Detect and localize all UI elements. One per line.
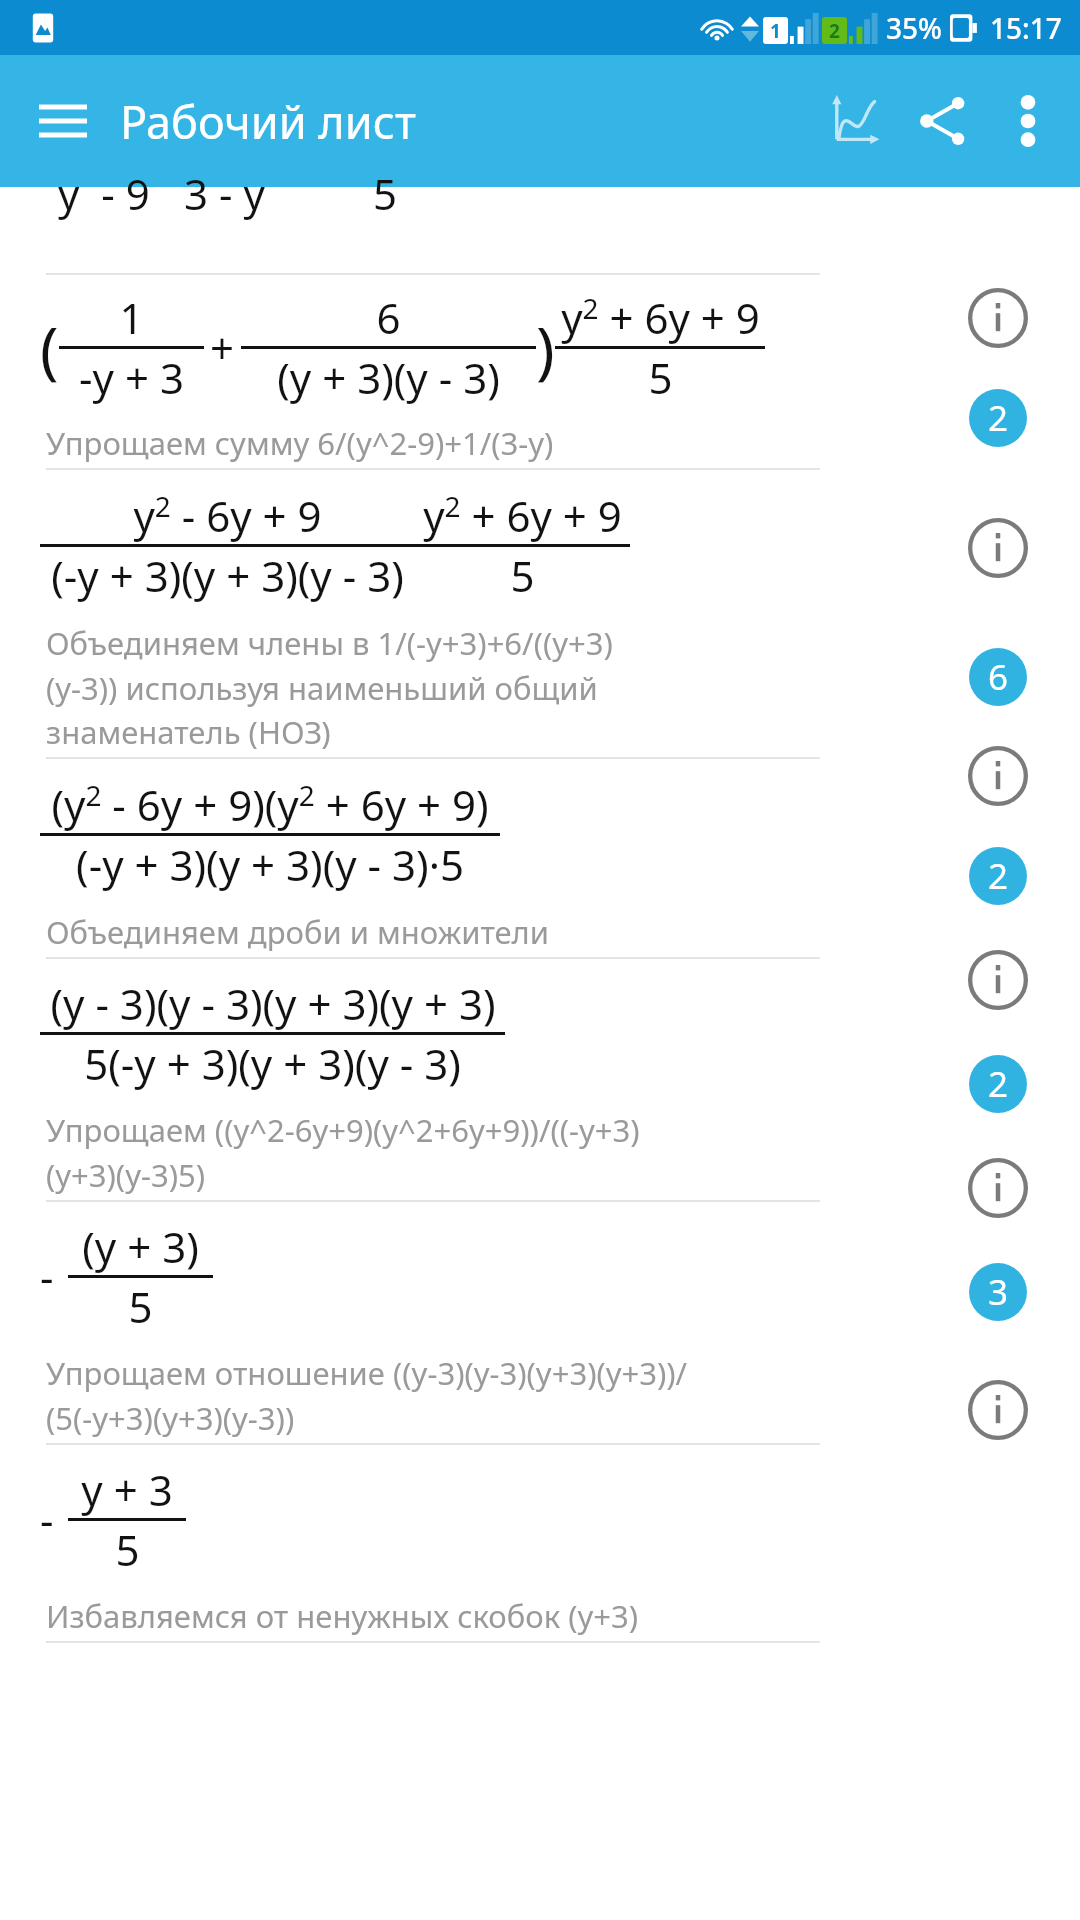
staticText: + bbox=[210, 319, 235, 376]
button[interactable]: Step 2 bbox=[968, 388, 1028, 448]
button[interactable]: Share bbox=[898, 76, 988, 166]
staticText: (-y + 3)(y + 3)(y - 3)·5 bbox=[76, 836, 464, 893]
staticText: Рабочий лист bbox=[120, 91, 416, 152]
staticText: (y - 3)(y - 3)(y + 3)(y + 3) bbox=[50, 975, 496, 1032]
staticText: 5 bbox=[648, 349, 673, 406]
staticText: (y + 3)(y - 3) bbox=[277, 349, 500, 406]
button[interactable]: More options bbox=[988, 81, 1068, 161]
staticText: y2 + 6y + 9 bbox=[423, 487, 622, 544]
staticText: Упрощаем отношение ((y-3)(y-3)(y+3)(y+3)… bbox=[46, 1352, 688, 1439]
staticText: y + 3 bbox=[81, 1461, 173, 1518]
staticText: y2 - 6y + 9 bbox=[133, 487, 322, 544]
staticText: 5 bbox=[115, 1521, 140, 1578]
staticText: 6 bbox=[988, 653, 1009, 701]
staticText: (y + 3) bbox=[82, 1218, 199, 1275]
staticText: Упрощаем сумму 6/(y^2-9)+1/(3-y) bbox=[46, 422, 554, 464]
staticText: 5(-y + 3)(y + 3)(y - 3) bbox=[84, 1035, 461, 1092]
staticText: 1 bbox=[119, 289, 144, 346]
button[interactable]: Step 2 bbox=[968, 846, 1028, 906]
staticText: 1 bbox=[770, 18, 781, 44]
staticText: 35% bbox=[886, 9, 942, 47]
button[interactable]: Info bbox=[968, 746, 1028, 806]
staticText: ) bbox=[536, 306, 555, 390]
button[interactable]: Info bbox=[968, 1158, 1028, 1218]
staticText: Объединяем члены в 1/(-y+3)+6/((y+3) (y-… bbox=[46, 622, 613, 753]
button[interactable]: Menu bbox=[28, 86, 98, 156]
button[interactable]: Graph bbox=[808, 76, 898, 166]
staticText: (y2 - 6y + 9)(y2 + 6y + 9) bbox=[51, 776, 489, 833]
staticText: 5 bbox=[510, 547, 535, 604]
staticText: -y + 3 bbox=[79, 349, 184, 406]
button[interactable]: Step 3 bbox=[968, 1262, 1028, 1322]
staticText: 3 - y bbox=[184, 165, 265, 222]
button[interactable]: Step 6 bbox=[968, 647, 1028, 707]
staticText: - bbox=[40, 1248, 54, 1305]
staticText: 2 bbox=[988, 394, 1009, 442]
staticText: 3 bbox=[988, 1268, 1009, 1316]
staticText: Объединяем дроби и множители bbox=[46, 911, 550, 953]
staticText: y2 + 6y + 9 bbox=[561, 289, 760, 346]
button[interactable]: Info bbox=[968, 518, 1028, 578]
staticText: Избавляемся от ненужных скобок (y+3) bbox=[46, 1595, 639, 1637]
staticText: (-y + 3)(y + 3)(y - 3) bbox=[51, 547, 404, 604]
staticText: 5 bbox=[373, 165, 398, 222]
staticText: ( bbox=[40, 306, 59, 390]
staticText: 2 bbox=[829, 18, 840, 44]
button[interactable]: Info bbox=[968, 950, 1028, 1010]
staticText: 2 bbox=[988, 1060, 1009, 1108]
button[interactable]: Step 2 bbox=[968, 1054, 1028, 1114]
staticText: Упрощаем ((y^2-6y+9)(y^2+6y+9))/((-y+3) … bbox=[46, 1109, 640, 1196]
staticText: 15:17 bbox=[990, 9, 1062, 47]
staticText: - bbox=[40, 1491, 54, 1548]
button[interactable]: Info bbox=[968, 1380, 1028, 1440]
staticText: 5 bbox=[128, 1278, 153, 1335]
staticText: 2 bbox=[988, 852, 1009, 900]
staticText: y - 9 bbox=[58, 165, 150, 222]
staticText: 6 bbox=[376, 289, 401, 346]
button[interactable]: Info bbox=[968, 288, 1028, 348]
